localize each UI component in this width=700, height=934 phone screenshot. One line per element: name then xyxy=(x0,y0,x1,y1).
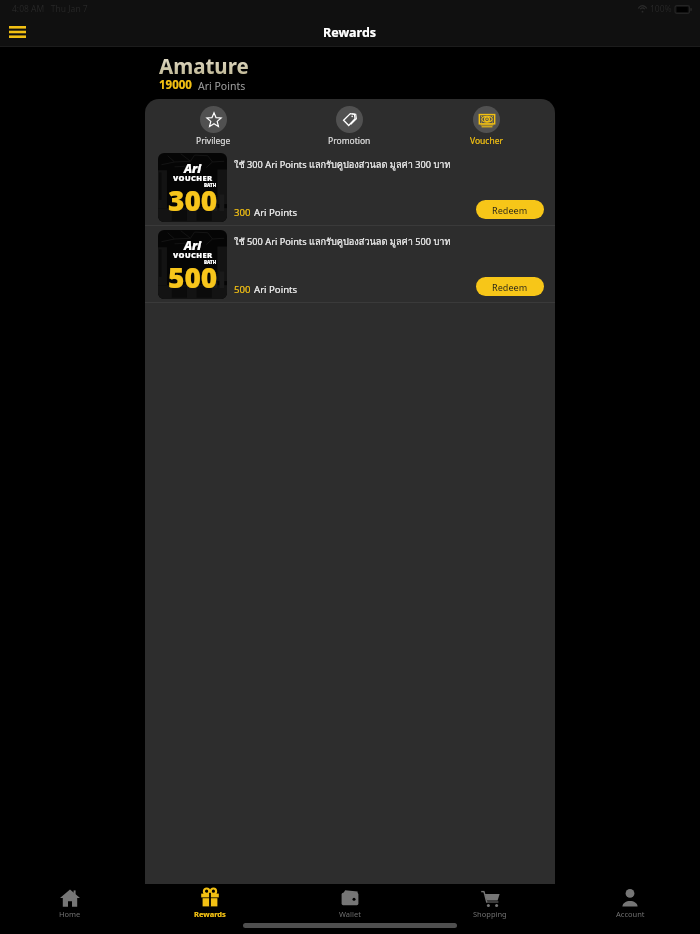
staticText: Ari Points xyxy=(254,283,298,296)
staticText: VOUCHER xyxy=(173,250,213,260)
staticText: Rewards xyxy=(194,909,226,919)
staticText: 100% xyxy=(650,3,672,15)
staticText: Promotion xyxy=(328,135,371,147)
staticText: ใช้ 500 Ari Points แลกรับคูปองส่วนลด มูล… xyxy=(234,234,451,249)
staticText: 4:08 AM Thu Jan 7 xyxy=(12,3,88,15)
staticText: Ari xyxy=(184,237,202,253)
staticText: 500 xyxy=(168,258,218,296)
button[interactable]: Redeem xyxy=(476,277,544,296)
staticText: 500 xyxy=(234,283,251,296)
staticText: Redeem xyxy=(492,204,528,216)
staticText: ใช้ 300 Ari Points แลกรับคูปองส่วนลด มูล… xyxy=(234,157,451,172)
staticText: VOUCHER xyxy=(173,173,213,183)
staticText: 300 xyxy=(168,181,218,219)
button[interactable]: Promotion xyxy=(281,106,418,148)
staticText: Account xyxy=(616,909,645,919)
button[interactable]: Ari xyxy=(145,149,555,225)
staticText: Amature xyxy=(159,52,249,80)
staticText: BATH xyxy=(204,259,217,265)
staticText: Voucher xyxy=(470,135,503,147)
staticText: Rewards xyxy=(323,24,377,41)
staticText: BATH xyxy=(204,182,217,188)
staticText: Ari Points xyxy=(254,206,298,219)
button[interactable]: Redeem xyxy=(476,200,544,219)
staticText: Ari Points xyxy=(198,79,246,93)
staticText: Shopping xyxy=(473,909,507,919)
button[interactable]: Shopping xyxy=(420,888,560,922)
button[interactable]: Privilege xyxy=(145,106,281,148)
staticText: Redeem xyxy=(492,281,528,293)
button[interactable]: Rewards xyxy=(140,888,280,922)
button[interactable]: Account xyxy=(560,888,700,922)
button[interactable]: Ari xyxy=(145,226,555,302)
staticText: Privilege xyxy=(196,135,231,147)
staticText: 300 xyxy=(234,206,251,219)
button[interactable]: Menu xyxy=(3,18,31,46)
staticText: 19000 xyxy=(159,77,192,93)
staticText: Home xyxy=(59,909,81,919)
staticText: Ari xyxy=(184,160,202,176)
button[interactable]: Wallet xyxy=(280,888,420,922)
staticText: Wallet xyxy=(339,909,361,919)
button[interactable]: Home xyxy=(0,888,140,922)
button[interactable]: Voucher xyxy=(418,106,555,148)
